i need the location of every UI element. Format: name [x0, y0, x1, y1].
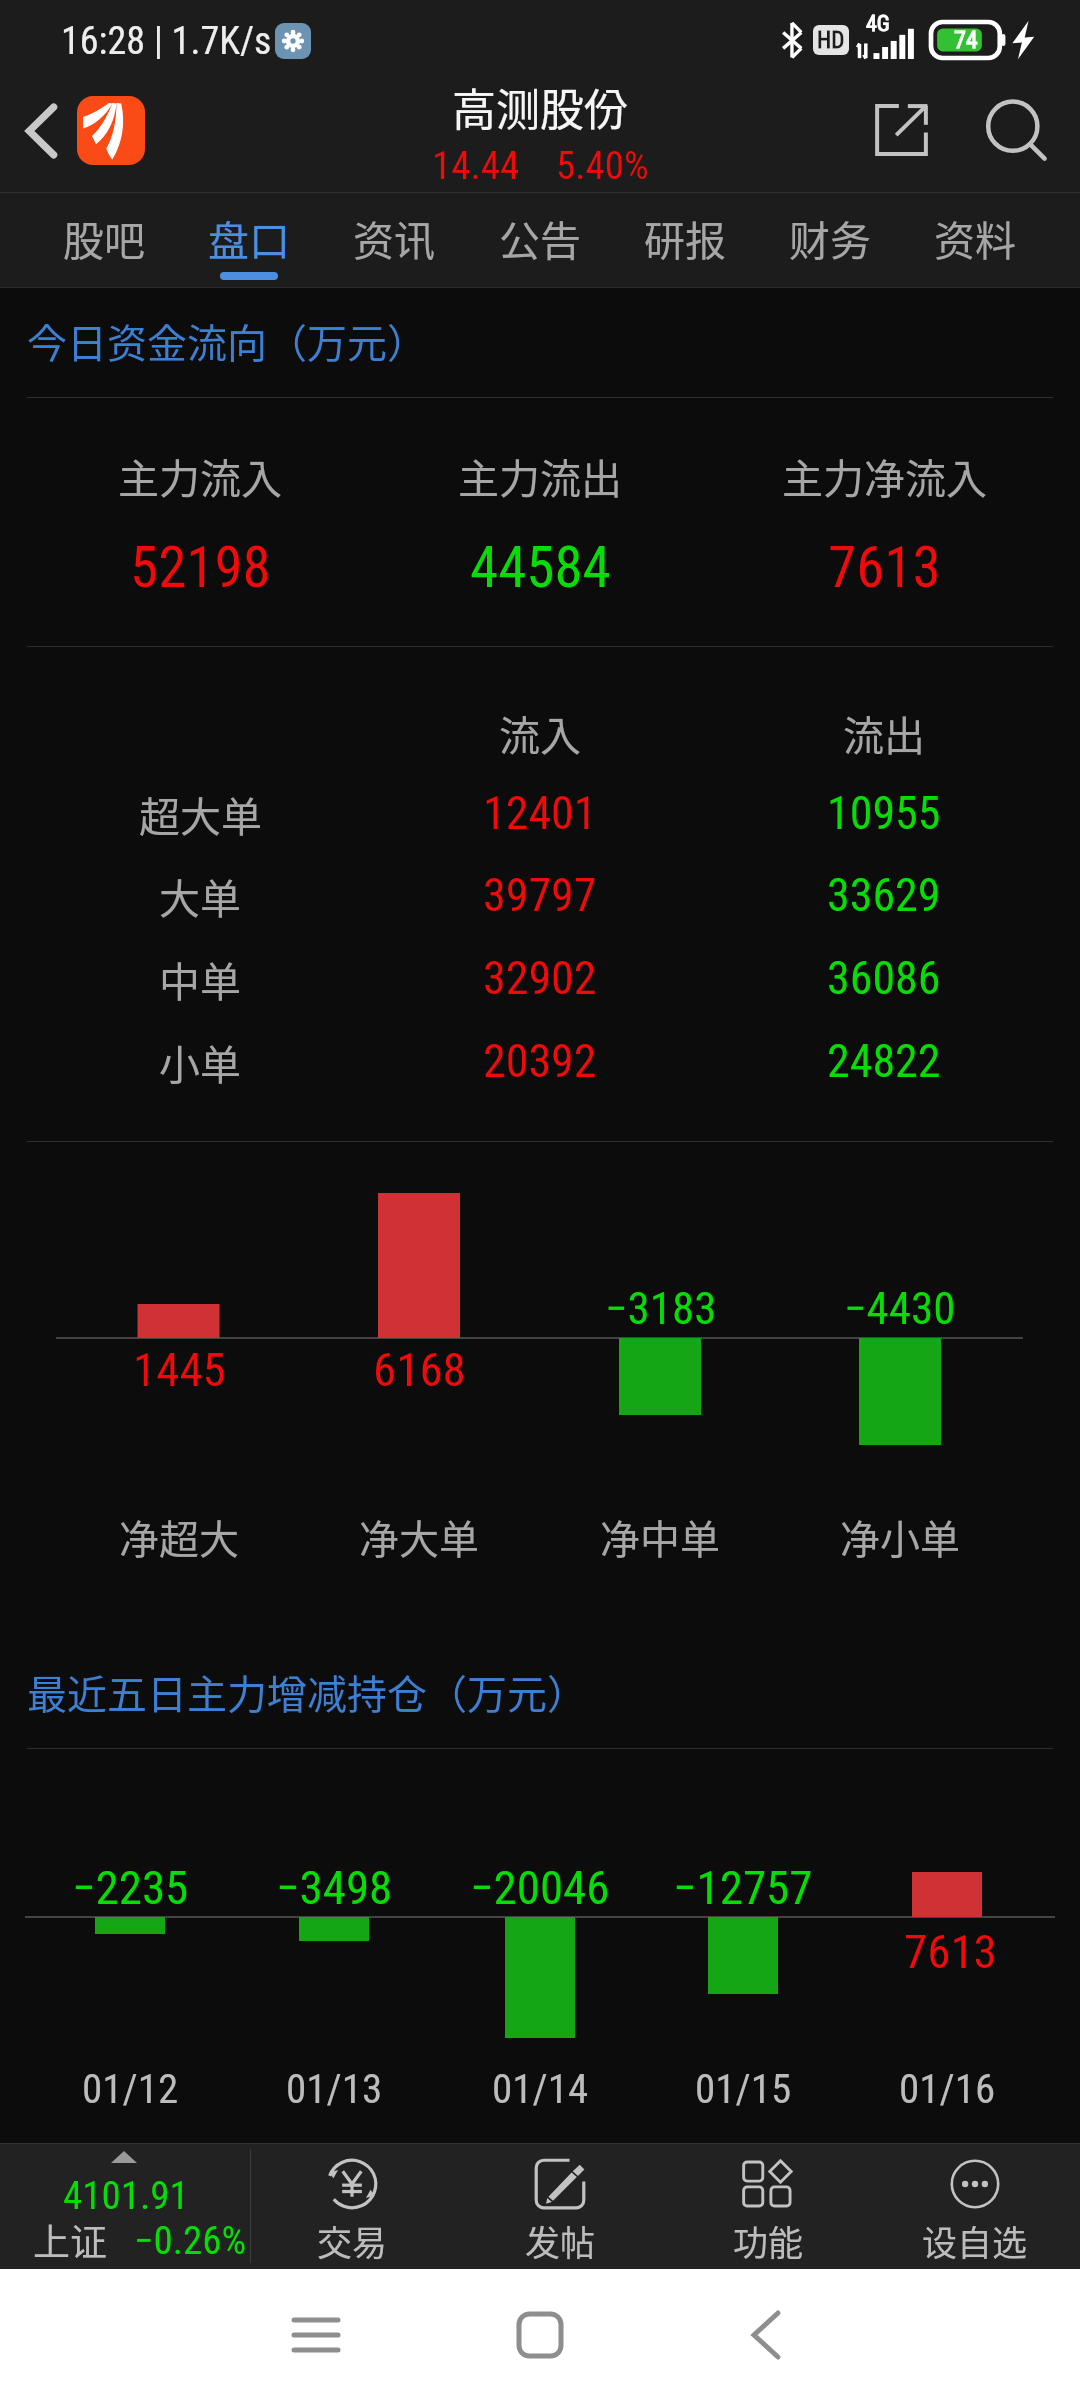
button[interactable]: Menu: [204, 2269, 428, 2400]
staticText: 功能: [733, 2215, 804, 2261]
staticText: 44584: [470, 534, 611, 601]
staticText: 36086: [827, 951, 941, 1005]
button[interactable]: 资讯: [322, 193, 466, 287]
staticText: 大单: [159, 866, 241, 925]
staticText: 1445: [133, 1342, 226, 1397]
button[interactable]: 设自选: [871, 2143, 1079, 2269]
button[interactable]: Search: [958, 80, 1068, 192]
staticText: 4G: [866, 11, 890, 37]
staticText: 净超大: [119, 1508, 239, 1566]
button[interactable]: 研报: [613, 193, 757, 287]
staticText: 盘口: [177, 208, 321, 267]
staticText: 74: [954, 26, 978, 54]
staticText: 资料: [903, 208, 1047, 267]
staticText: 流入: [499, 703, 581, 762]
staticText: 净小单: [840, 1508, 960, 1566]
button[interactable]: [0, 2143, 250, 2269]
staticText: −3183: [605, 1282, 717, 1335]
staticText: 01/12: [82, 2065, 179, 2113]
staticText: −12757: [673, 1860, 813, 1915]
staticText: 净中单: [600, 1508, 720, 1566]
staticText: 33629: [827, 868, 941, 922]
staticText: 公告: [468, 208, 612, 267]
staticText: 超大单: [139, 784, 262, 843]
staticText: 小单: [159, 1032, 241, 1091]
staticText: 资讯: [322, 208, 466, 267]
staticText: 12401: [483, 786, 597, 840]
staticText: 7613: [828, 534, 941, 601]
staticText: 5.40%: [556, 143, 649, 189]
staticText: 最近五日主力增减持仓（万元）: [27, 1663, 587, 1721]
button[interactable]: Home: [428, 2269, 652, 2400]
staticText: 01/13: [286, 2065, 383, 2113]
staticText: 01/15: [695, 2065, 792, 2113]
staticText: 主力流出: [458, 446, 622, 505]
staticText: 32902: [483, 951, 597, 1005]
staticText: −3498: [276, 1860, 393, 1915]
button[interactable]: Share: [851, 80, 951, 192]
staticText: 中单: [159, 949, 241, 1008]
staticText: 24822: [827, 1034, 941, 1088]
staticText: 流出: [843, 703, 925, 762]
staticText: 4101.91: [63, 2173, 189, 2219]
staticText: 52198: [130, 534, 271, 601]
staticText: −20046: [470, 1860, 610, 1915]
staticText: 6168: [373, 1342, 466, 1397]
button[interactable]: 交易: [248, 2143, 456, 2269]
staticText: 上证: [33, 2213, 107, 2261]
button[interactable]: Eastmoney: [77, 96, 145, 165]
button[interactable]: 股吧: [32, 193, 176, 287]
staticText: 发帖: [525, 2215, 596, 2261]
staticText: 主力净流入: [782, 446, 987, 505]
staticText: 20392: [483, 1034, 597, 1088]
staticText: 交易: [317, 2215, 388, 2261]
button[interactable]: 盘口: [177, 193, 321, 287]
button[interactable]: 资料: [903, 193, 1047, 287]
staticText: 16:28 | 1.7K/s: [61, 19, 272, 64]
button[interactable]: 财务: [758, 193, 902, 287]
button[interactable]: 功能: [664, 2143, 872, 2269]
staticText: 01/14: [492, 2065, 589, 2113]
staticText: HD: [817, 27, 845, 54]
staticText: 净大单: [359, 1508, 479, 1566]
staticText: −4430: [844, 1282, 956, 1335]
staticText: 01/16: [899, 2065, 996, 2113]
staticText: 10955: [827, 786, 941, 840]
staticText: 14.44: [432, 143, 520, 189]
staticText: 7613: [904, 1924, 997, 1979]
staticText: 股吧: [32, 208, 176, 267]
button[interactable]: 公告: [468, 193, 612, 287]
staticText: 研报: [613, 208, 757, 267]
staticText: 39797: [483, 868, 597, 922]
staticText: 高测股份: [452, 75, 628, 139]
staticText: 财务: [758, 208, 902, 267]
staticText: 主力流入: [118, 446, 282, 505]
staticText: 设自选: [922, 2215, 1028, 2261]
button[interactable]: Back: [654, 2269, 878, 2400]
button[interactable]: 发帖: [456, 2143, 664, 2269]
staticText: −0.26%: [134, 2218, 247, 2264]
button[interactable]: Back: [0, 80, 82, 192]
staticText: −2235: [72, 1860, 189, 1915]
staticText: 今日资金流向（万元）: [27, 312, 427, 370]
